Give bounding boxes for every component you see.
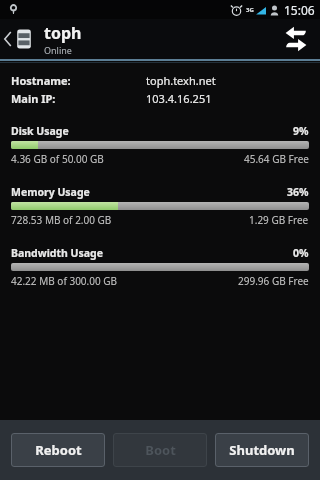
staticText: 728.53 MB of 2.00 GB — [11, 213, 249, 227]
staticText: Hostname: — [11, 73, 146, 88]
staticText: 42.22 MB of 300.00 GB — [11, 274, 238, 288]
button[interactable]: Bandwidth Usage — [0, 246, 320, 288]
staticText: 0% — [293, 246, 309, 260]
button[interactable]: Reboot — [11, 433, 105, 467]
button: Boot — [113, 433, 207, 467]
staticText: 3G — [246, 6, 254, 14]
staticText: toph.texh.net — [146, 73, 216, 88]
staticText: 45.64 GB Free — [244, 152, 309, 166]
button[interactable]: Memory Usage — [0, 185, 320, 227]
staticText: 4.36 GB of 50.00 GB — [11, 152, 244, 166]
staticText: Boot — [145, 441, 176, 459]
staticText: Reboot — [35, 441, 82, 459]
button[interactable]: Refresh — [272, 19, 320, 59]
staticText: Main IP: — [11, 91, 146, 106]
staticText: 299.96 GB Free — [238, 274, 309, 288]
button[interactable]: Shutdown — [215, 433, 309, 467]
button[interactable]: Navigate up — [0, 19, 38, 59]
staticText: Memory Usage — [11, 185, 287, 199]
staticText: Shutdown — [229, 441, 295, 459]
staticText: 9% — [293, 124, 309, 138]
staticText: 15:06 — [284, 2, 315, 18]
staticText: toph — [44, 22, 82, 44]
staticText: Bandwidth Usage — [11, 246, 293, 260]
staticText: 1.29 GB Free — [249, 213, 309, 227]
button[interactable]: Disk Usage — [0, 124, 320, 166]
staticText: Disk Usage — [11, 124, 293, 138]
staticText: Online — [44, 44, 72, 56]
staticText: 36% — [287, 185, 309, 199]
staticText: 103.4.16.251 — [146, 91, 212, 106]
